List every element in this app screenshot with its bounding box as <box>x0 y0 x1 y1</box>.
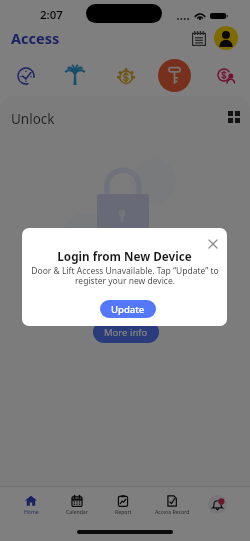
staticText: Unlock <box>11 110 55 128</box>
button[interactable]: Notes <box>189 28 209 48</box>
staticText: Door & Lift Access Unavailable. Tap “Upd… <box>31 265 219 286</box>
button[interactable]: Leave <box>58 59 91 92</box>
button[interactable]: Profile <box>214 26 238 50</box>
staticText: Home <box>24 508 39 515</box>
button[interactable]: Calendar <box>53 495 101 515</box>
staticText: Report <box>115 508 132 515</box>
button[interactable]: More info <box>93 321 159 343</box>
staticText: Access <box>11 28 60 48</box>
button[interactable]: Close <box>205 236 220 251</box>
staticText: Calendar <box>66 508 88 515</box>
button[interactable]: Payroll <box>109 59 142 92</box>
staticText: Access Record <box>155 508 190 515</box>
button[interactable]: Notifications <box>208 495 227 514</box>
button[interactable]: Report <box>99 495 147 515</box>
button[interactable]: Claims <box>209 59 242 92</box>
button[interactable]: Key access <box>158 59 191 92</box>
button[interactable]: Access Record <box>148 495 196 515</box>
button[interactable]: Grid view <box>225 108 243 126</box>
staticText: Login from New Device <box>57 248 192 264</box>
staticText: 2:07 <box>40 7 63 23</box>
staticText: More info <box>104 326 148 339</box>
staticText: Update <box>111 303 145 316</box>
button[interactable]: Update <box>100 300 156 318</box>
button[interactable]: Time <box>9 59 42 92</box>
button[interactable]: Home <box>7 495 55 515</box>
